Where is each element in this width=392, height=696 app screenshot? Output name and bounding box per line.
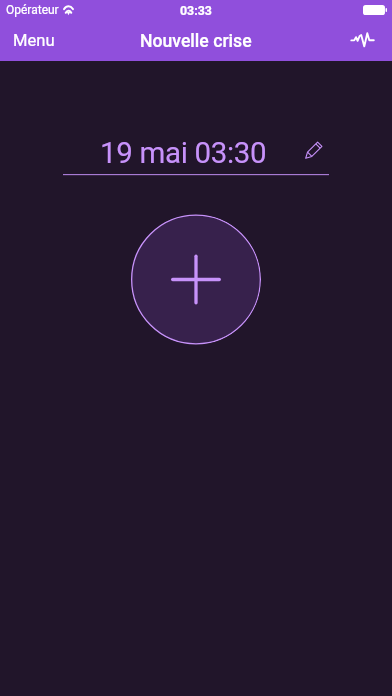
staticText: 03:33	[180, 3, 212, 18]
button[interactable]: Menu	[0, 20, 68, 61]
button[interactable]: Nouvelle crise	[130, 214, 261, 345]
staticText: Menu	[13, 31, 55, 50]
staticText: Nouvelle crise	[140, 31, 252, 52]
button[interactable]: Suivi	[337, 20, 392, 61]
staticText: 19 mai 03:30	[100, 136, 267, 171]
button[interactable]: 19 mai 03:30	[64, 133, 302, 173]
staticText: Opérateur	[6, 3, 59, 17]
button[interactable]: Modifier la date	[296, 132, 332, 168]
